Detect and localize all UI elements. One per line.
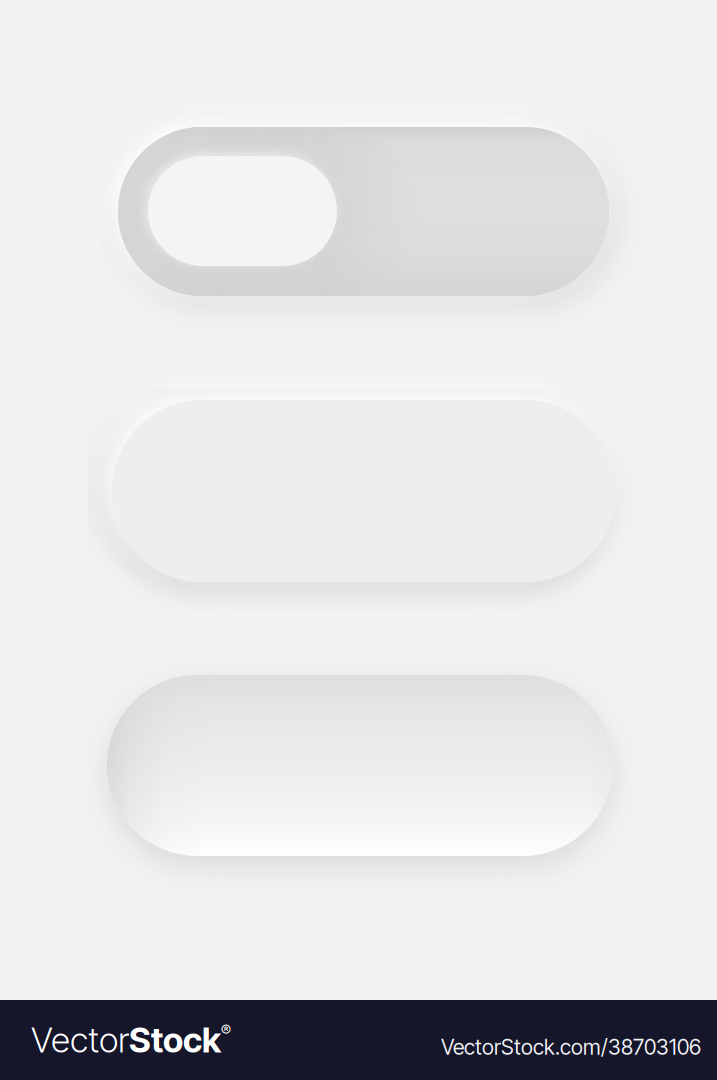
button[interactable]: Toggle switch, off <box>118 127 609 296</box>
button[interactable]: Raised button <box>107 675 613 856</box>
staticText: ® <box>221 1021 231 1040</box>
staticText: Vector <box>31 1019 129 1061</box>
staticText: VectorStock.com/38703106 <box>441 1034 701 1060</box>
staticText: Stock <box>129 1019 221 1061</box>
